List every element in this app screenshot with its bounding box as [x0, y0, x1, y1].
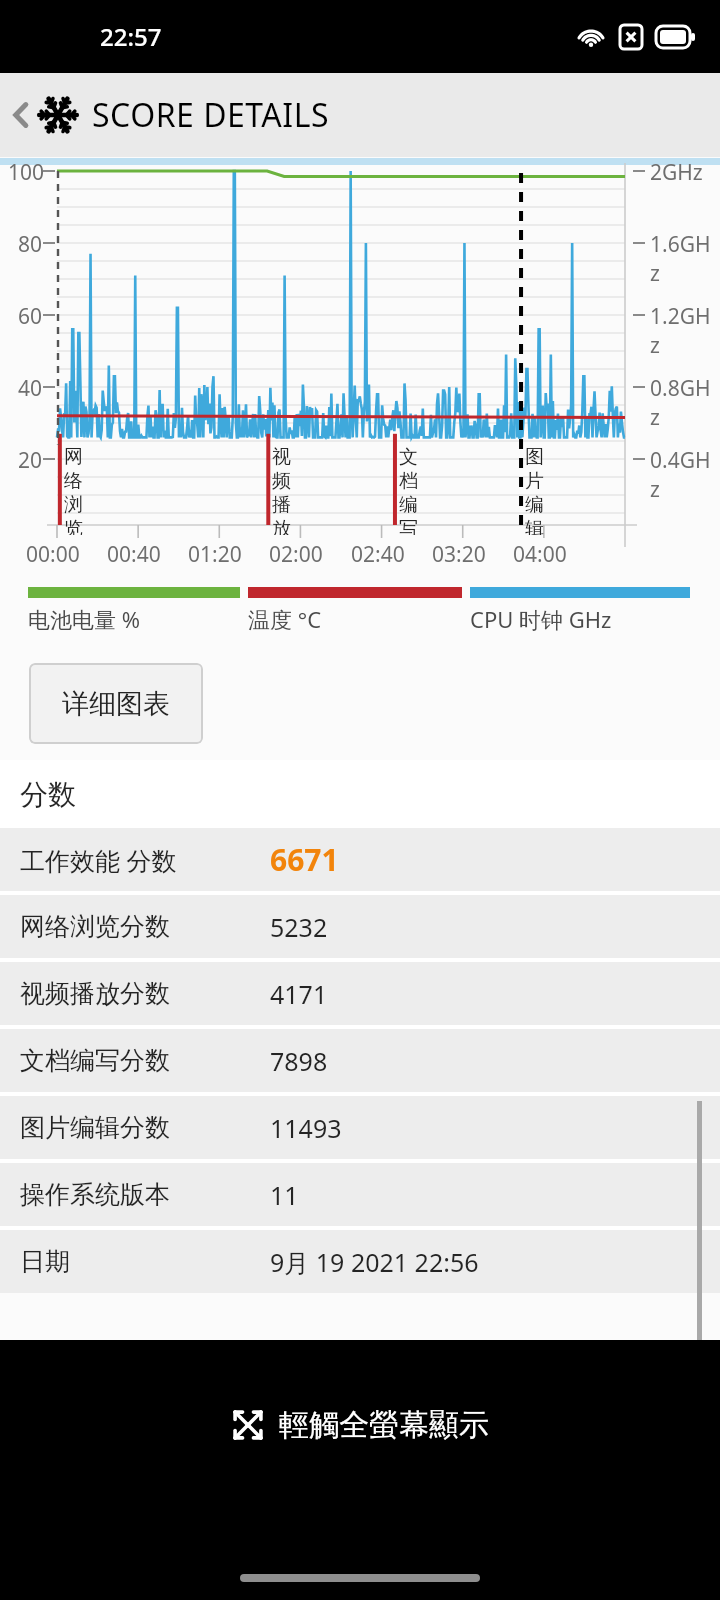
staticText: 4171: [270, 977, 328, 1011]
button[interactable]: 网络浏览分数: [0, 895, 720, 958]
staticText: 0.8GHz: [650, 374, 720, 432]
staticText: 分数: [20, 777, 76, 812]
button[interactable]: 工作效能 分数: [0, 828, 720, 891]
staticText: 写: [399, 517, 418, 535]
staticText: 02:40: [351, 540, 405, 569]
staticText: 40: [18, 374, 43, 403]
staticText: 02:00: [269, 540, 323, 569]
staticText: 网: [64, 445, 83, 469]
staticText: 00:40: [107, 540, 161, 569]
staticText: 编: [525, 493, 544, 517]
staticText: 播: [272, 493, 291, 517]
staticText: 11: [270, 1178, 299, 1212]
staticText: 图片编辑分数: [20, 1112, 270, 1143]
button[interactable]: 详细图表: [29, 663, 203, 744]
staticText: 编: [399, 493, 418, 517]
staticText: 80: [18, 230, 43, 259]
staticText: 100: [8, 158, 45, 187]
staticText: 览: [64, 517, 83, 535]
staticText: 00:00: [26, 540, 80, 569]
staticText: 60: [18, 302, 43, 331]
button[interactable]: 輕觸全螢幕顯示: [231, 1406, 489, 1444]
button[interactable]: 图片编辑分数: [0, 1096, 720, 1159]
staticText: 浏: [64, 493, 83, 517]
staticText: 视频播放分数: [20, 978, 270, 1009]
staticText: 6671: [270, 839, 339, 880]
staticText: 9月 19 2021 22:56: [270, 1245, 479, 1279]
staticText: 工作效能 分数: [20, 843, 270, 877]
staticText: 图: [525, 445, 544, 469]
staticText: 络: [64, 469, 83, 493]
staticText: 档: [399, 469, 418, 493]
staticText: 文: [399, 445, 418, 469]
staticText: 03:20: [432, 540, 486, 569]
staticText: 5232: [270, 910, 328, 944]
staticText: 1.2GHz: [650, 302, 720, 360]
staticText: 视: [272, 445, 291, 469]
button[interactable]: Back to score details: [0, 73, 720, 157]
staticText: 輕觸全螢幕顯示: [279, 1406, 489, 1444]
staticText: 0.4GHz: [650, 446, 720, 504]
staticText: 辑: [525, 517, 544, 535]
staticText: 22:57: [100, 20, 162, 53]
staticText: 01:20: [188, 540, 242, 569]
staticText: CPU 时钟 GHz: [470, 604, 612, 634]
button[interactable]: 文档编写分数: [0, 1029, 720, 1092]
button[interactable]: 视频播放分数: [0, 962, 720, 1025]
staticText: 文档编写分数: [20, 1045, 270, 1076]
staticText: 7898: [270, 1044, 328, 1078]
button[interactable]: 日期: [0, 1230, 720, 1293]
staticText: 操作系统版本: [20, 1179, 270, 1210]
staticText: 电池电量 %: [28, 604, 141, 634]
staticText: 详细图表: [62, 687, 170, 721]
staticText: SCORE DETAILS: [92, 93, 329, 137]
staticText: 频: [272, 469, 291, 493]
staticText: 20: [18, 446, 43, 475]
staticText: 04:00: [513, 540, 567, 569]
staticText: 网络浏览分数: [20, 911, 270, 942]
staticText: 11493: [270, 1111, 342, 1145]
staticText: 1.6GHz: [650, 230, 720, 288]
staticText: 温度 °C: [248, 604, 322, 634]
staticText: 日期: [20, 1246, 270, 1277]
button[interactable]: 操作系统版本: [0, 1163, 720, 1226]
staticText: 2GHz: [650, 158, 703, 187]
staticText: 片: [525, 469, 544, 493]
staticText: 放: [272, 517, 291, 535]
